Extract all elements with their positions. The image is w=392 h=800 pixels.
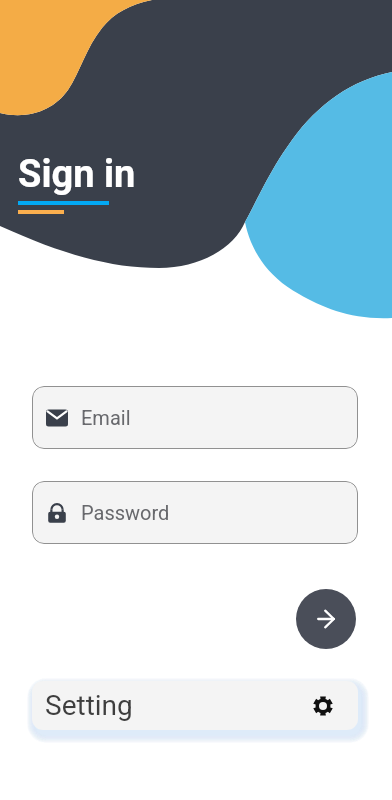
button[interactable]: Password [32,481,358,544]
staticText: Setting [45,689,133,722]
staticText: Password [81,501,170,524]
button[interactable]: Continue [296,589,356,649]
button[interactable]: Email [32,386,358,449]
staticText: Email [81,406,131,429]
staticText: Sign in [18,152,136,197]
button[interactable]: Setting [32,681,358,730]
